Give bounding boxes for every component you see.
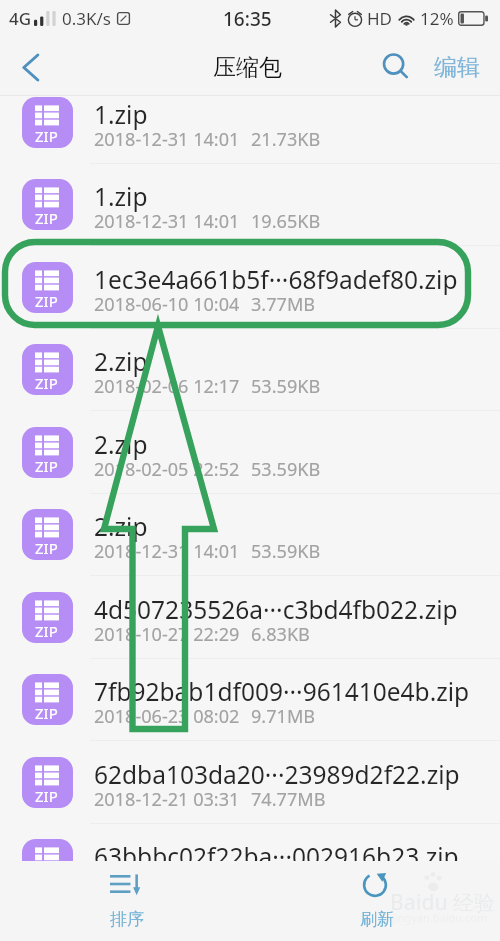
staticText: ZIP [35,373,58,393]
staticText: 2018-02-05 22:52 [94,457,240,482]
staticText: ZIP [35,621,58,641]
staticText: 2018-12-31 14:01 [94,539,240,564]
staticText: 1.zip [94,180,500,213]
button[interactable]: 编辑 [434,53,480,82]
staticText: 2018-12-31 14:01 [94,209,240,234]
button[interactable]: ZIP [0,658,500,741]
staticText: 2.zip [94,345,500,378]
button[interactable]: ZIP [0,493,500,576]
button[interactable]: ZIP [0,246,500,329]
staticText: 6.83KB [251,622,310,647]
staticText: 编辑 [434,53,480,82]
button[interactable]: ZIP [0,328,500,411]
button[interactable]: 排序 [0,861,250,941]
button[interactable]: ZIP [0,411,500,494]
staticText: 2018-12-31 14:01 [94,127,240,152]
staticText: 53.59KB [251,457,321,482]
staticText: 3.77MB [251,292,316,317]
staticText: 4d507235526a···c3bd4fb022.zip [94,593,500,626]
staticText: ZIP [35,456,58,476]
staticText: 12% [420,7,454,30]
staticText: ZIP [35,538,58,558]
staticText: jingyan.baidu.com [392,910,488,925]
staticText: 1ec3e4a661b5f···68f9adef80.zip [94,263,500,296]
staticText: ZIP [35,208,58,228]
staticText: ZIP [35,703,58,723]
button[interactable]: Back [8,44,54,90]
staticText: 2018-02-06 12:17 [94,374,240,399]
button[interactable]: ZIP [0,163,500,246]
staticText: 63bbbc02f22ba···002916b23.zip [94,840,500,873]
staticText: 2018-10-27 22:29 [94,622,240,647]
staticText: ZIP [35,291,58,311]
button[interactable]: ZIP [0,741,500,824]
staticText: 2018-06-10 10:04 [94,292,240,317]
staticText: 2.zip [94,510,500,543]
staticText: 21.73KB [251,127,321,152]
staticText: 53.59KB [251,539,321,564]
staticText: 16:35 [223,6,272,32]
staticText: ZIP [35,786,58,806]
staticText: 4G [9,7,32,30]
staticText: ZIP [35,126,58,146]
staticText: 2018-11-11 11:11 [94,869,240,894]
staticText: 74.77MB [251,787,326,812]
button[interactable]: Search [373,39,429,95]
staticText: Baidu 经验 [390,888,496,917]
staticText: 9.71MB [251,704,316,729]
staticText: 2018-06-23 08:02 [94,704,240,729]
staticText: 0.3K/s [62,7,111,30]
staticText: 19.65KB [251,209,321,234]
button[interactable]: ZIP [0,823,500,906]
button[interactable]: ZIP [0,576,500,659]
button[interactable]: 刷新 [250,861,500,941]
staticText: 压缩包 [213,53,282,82]
staticText: 7fb92bab1df009···961410e4b.zip [94,675,500,708]
staticText: 62dba103da20···23989d2f22.zip [94,758,500,791]
staticText: 53.59KB [251,374,321,399]
staticText: 1.zip [94,98,500,131]
staticText: 2018-12-21 03:31 [94,787,240,812]
button[interactable]: ZIP [0,96,500,164]
staticText: 2.zip [94,428,500,461]
staticText: 排序 [110,909,144,930]
staticText: 刷新 [360,909,394,930]
staticText: HD [367,7,393,30]
